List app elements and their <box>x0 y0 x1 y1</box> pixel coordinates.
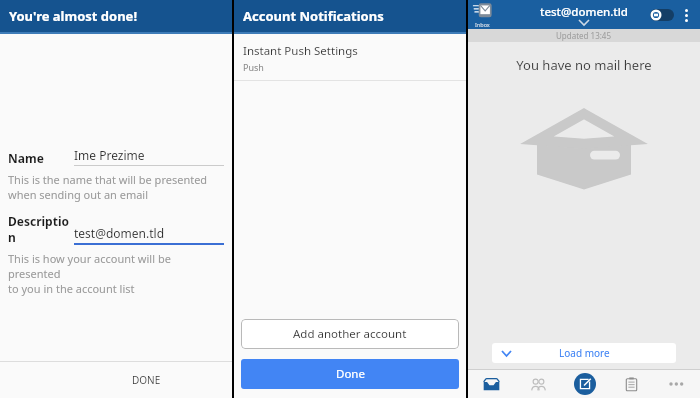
button[interactable]: Inbox <box>473 2 492 28</box>
button[interactable]: test@domen.tld <box>540 4 628 25</box>
staticText: Account Notifications <box>243 7 384 25</box>
staticText: Done <box>336 366 365 382</box>
staticText: This is the name that will be presented … <box>8 172 208 202</box>
staticText: Inbox <box>475 21 490 28</box>
button[interactable]: Done <box>241 359 459 389</box>
staticText: test@domen.tld <box>74 225 165 241</box>
staticText: Add another account <box>293 326 407 342</box>
staticText: test@domen.tld <box>540 4 628 20</box>
button[interactable]: Load more <box>492 343 676 363</box>
staticText: Instant Push Settings <box>243 43 358 59</box>
staticText: Updated 13:45 <box>556 30 612 41</box>
button[interactable]: Add another account <box>241 319 459 349</box>
staticText: Load more <box>559 346 610 360</box>
button[interactable]: Inbox <box>468 370 515 398</box>
button[interactable]: Compose <box>562 370 608 398</box>
button[interactable]: Tasks <box>608 370 654 398</box>
staticText: You have no mail here <box>516 56 652 74</box>
button[interactable]: Unread toggle <box>650 9 674 21</box>
staticText: Name <box>8 150 74 166</box>
staticText: You're almost done! <box>9 7 138 25</box>
staticText: This is how your account will be present… <box>8 251 226 296</box>
button[interactable]: Contacts <box>515 370 562 398</box>
button[interactable]: Instant Push Settings <box>234 34 466 80</box>
button[interactable]: More <box>654 370 700 398</box>
button[interactable]: DONE <box>0 362 232 398</box>
staticText: DONE <box>132 373 161 387</box>
staticText: Ime Prezime <box>74 147 145 163</box>
button[interactable]: More options <box>678 7 694 23</box>
staticText: Description <box>8 213 74 245</box>
staticText: Push <box>243 61 264 73</box>
